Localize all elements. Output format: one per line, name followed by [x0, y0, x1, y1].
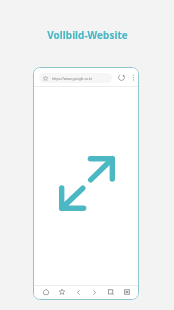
button[interactable]: Windows	[120, 285, 134, 299]
button[interactable]: Tabs	[104, 285, 118, 299]
button[interactable]: Forward	[87, 285, 101, 299]
button[interactable]: Reload	[116, 72, 127, 83]
button[interactable]: Bookmarks	[55, 285, 69, 299]
staticText: Vollbild-Website	[47, 28, 128, 42]
button[interactable]: https://www.google.co.kr	[39, 73, 112, 83]
staticText: https://www.google.co.kr	[52, 76, 93, 81]
button[interactable]: More options	[128, 72, 139, 83]
button[interactable]: Home	[39, 285, 53, 299]
button[interactable]: Back	[71, 285, 85, 299]
